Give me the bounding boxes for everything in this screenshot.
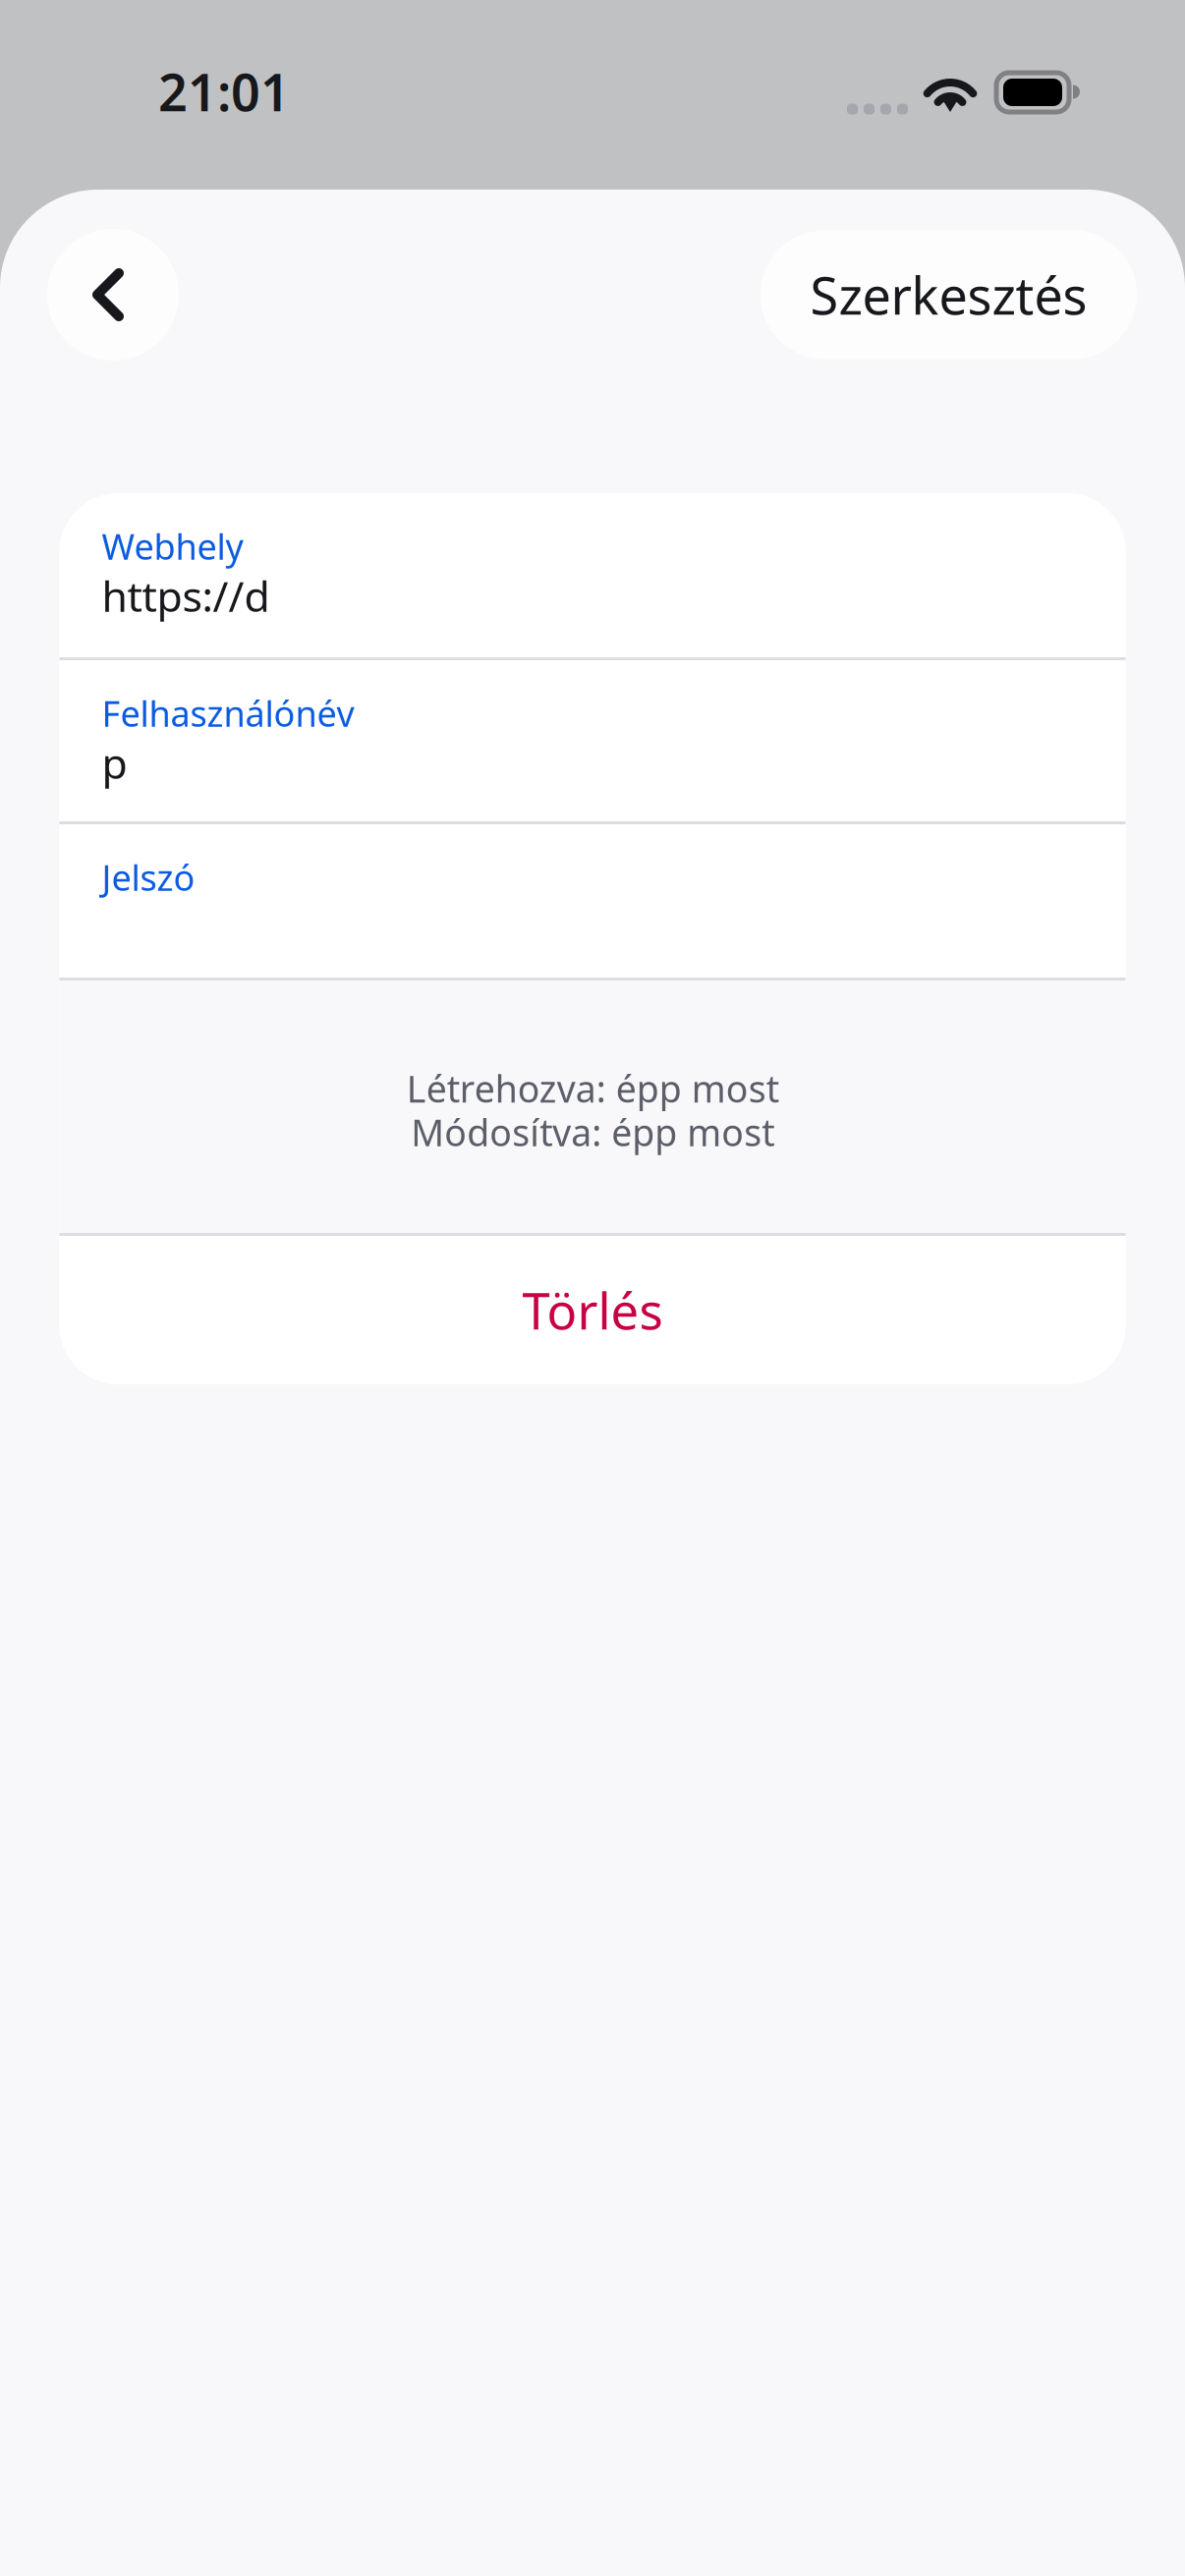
staticText: Webhely	[102, 523, 243, 570]
button[interactable]: Törlés	[59, 1236, 1126, 1384]
staticText: Létrehozva: épp most Módosítva: épp most	[406, 1064, 779, 1157]
staticText: 21:01	[158, 57, 290, 125]
staticText: Szerkesztés	[810, 261, 1087, 329]
button[interactable]: Jelszó	[59, 824, 1126, 978]
button[interactable]: Webhely	[59, 493, 1126, 657]
button[interactable]: Felhasználónév	[59, 660, 1126, 821]
staticText: Felhasználónév	[102, 690, 354, 737]
button[interactable]: Back	[47, 229, 179, 361]
button[interactable]: Szerkesztés	[761, 230, 1137, 359]
staticText: Törlés	[522, 1277, 663, 1343]
staticText: p	[102, 735, 127, 790]
staticText: Jelszó	[102, 854, 195, 901]
staticText: https://d	[102, 568, 270, 623]
